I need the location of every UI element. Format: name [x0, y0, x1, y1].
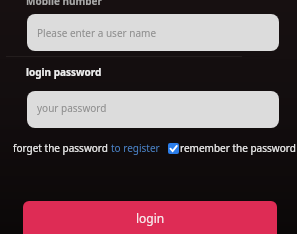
staticText: Please enter a user name [37, 26, 157, 40]
staticText: remember the password [180, 141, 296, 155]
button[interactable]: login [23, 201, 277, 234]
button[interactable]: your password [27, 91, 279, 128]
button[interactable]: forget the password [13, 141, 108, 155]
button[interactable]: remember the password [168, 141, 296, 155]
button[interactable]: to register [111, 141, 160, 155]
staticText: login password [26, 65, 102, 79]
staticText: Mobile number [26, 0, 103, 8]
staticText: forget the password [13, 141, 108, 155]
staticText: your password [37, 101, 107, 115]
button[interactable]: Please enter a user name [27, 14, 279, 51]
staticText: login [136, 210, 165, 226]
staticText: to register [111, 141, 160, 155]
